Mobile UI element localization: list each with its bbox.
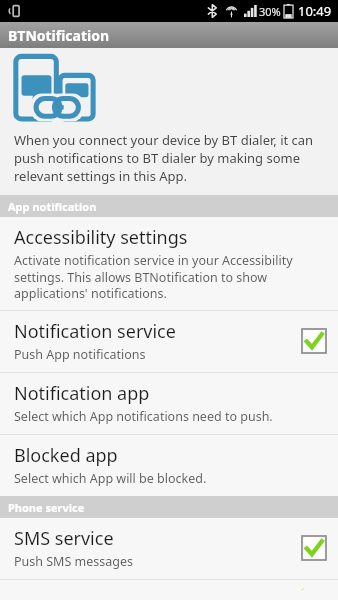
button[interactable]: Toggle	[300, 588, 328, 591]
staticText: When you connect your device by BT diale…	[14, 131, 318, 185]
button[interactable]: Toggle	[300, 327, 328, 355]
staticText: Accessibility settings	[14, 225, 188, 250]
button[interactable]: Toggle	[300, 534, 328, 562]
staticText: Push App notifications	[14, 346, 146, 363]
staticText: SMS service	[14, 526, 114, 551]
staticText: Notification service	[14, 319, 176, 344]
staticText: Notification app	[14, 381, 150, 406]
button[interactable]: Blocked app	[0, 435, 338, 496]
staticText: 30%	[259, 4, 281, 19]
staticText: App notification	[8, 199, 97, 214]
staticText: Phone service	[8, 500, 85, 515]
staticText: 10:49	[298, 2, 332, 20]
button[interactable]: Accessibility settings	[0, 217, 338, 310]
staticText: Activate notification service in your Ac…	[14, 252, 328, 301]
staticText: Select which App notifications need to p…	[14, 408, 273, 425]
button[interactable]: Notification service	[0, 311, 338, 372]
staticText: Select which App will be blocked.	[14, 470, 207, 487]
staticText: Push SMS messages	[14, 553, 134, 570]
staticText: Blocked app	[14, 443, 118, 468]
staticText: BTNotification	[8, 26, 110, 45]
button[interactable]: SMS service	[0, 518, 338, 579]
button[interactable]: Notification app	[0, 373, 338, 434]
